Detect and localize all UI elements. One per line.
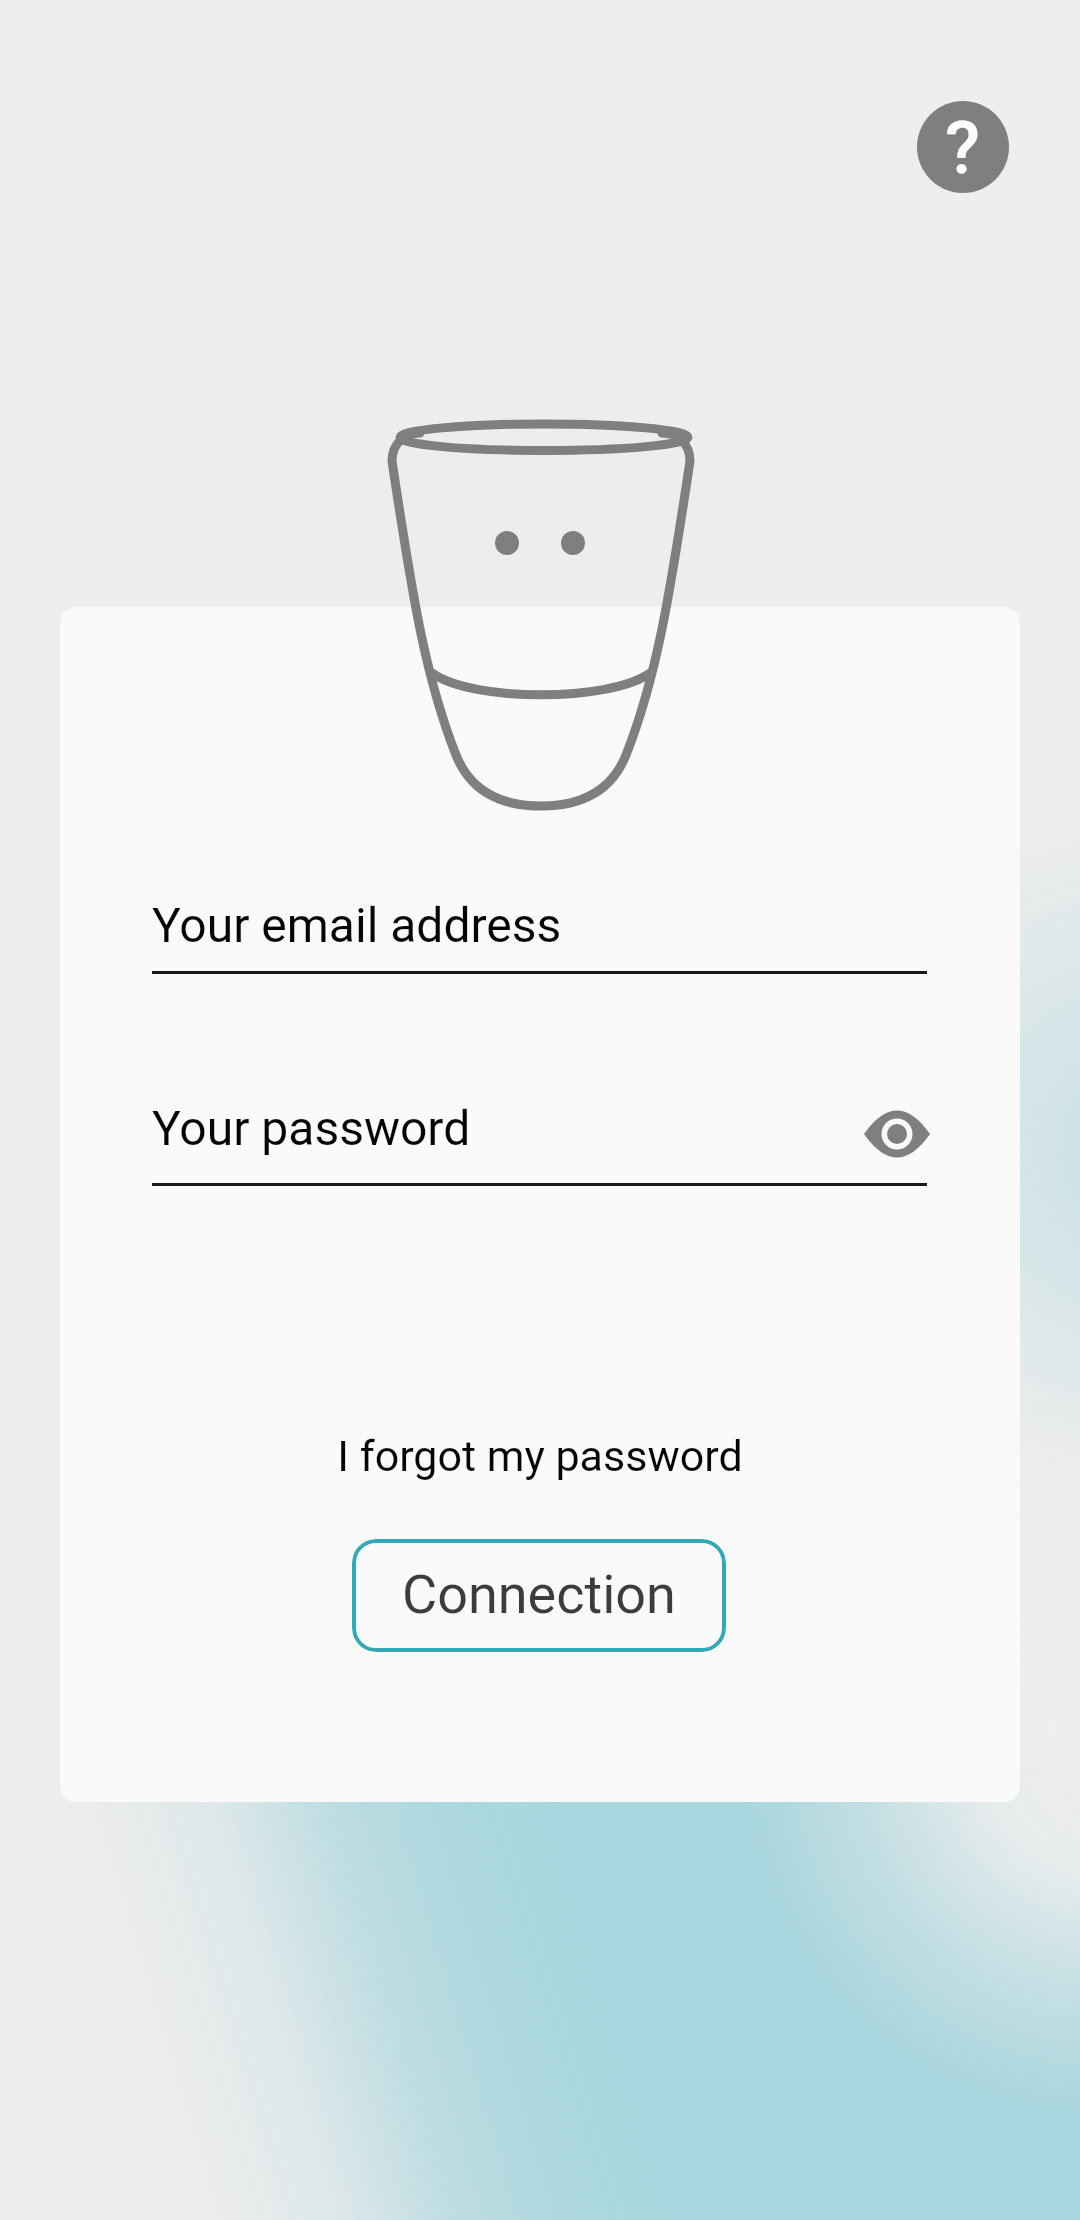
button[interactable]: Your email address <box>152 880 927 975</box>
staticText: ? <box>945 106 981 190</box>
button[interactable]: I forgot my password <box>300 1418 780 1494</box>
button[interactable]: Your password <box>152 1092 927 1187</box>
staticText: I forgot my password <box>337 1431 743 1481</box>
staticText: Connection <box>402 1563 676 1626</box>
staticText: Your email address <box>152 897 562 953</box>
button[interactable]: Show password <box>855 1092 939 1176</box>
button[interactable]: Connection <box>352 1539 726 1652</box>
staticText: Your password <box>152 1100 471 1156</box>
button[interactable]: Help <box>917 101 1009 193</box>
